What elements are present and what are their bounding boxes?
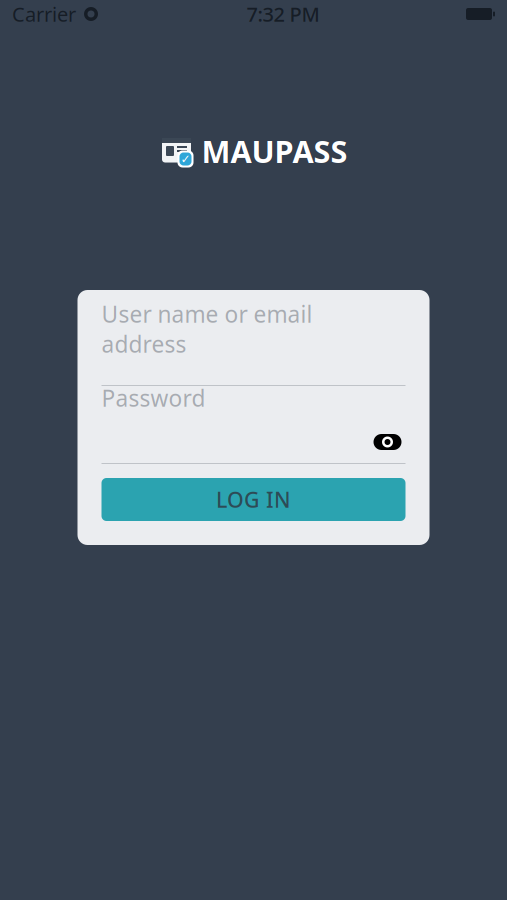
staticText: LOG IN [216, 485, 291, 514]
staticText: 7:32 PM [246, 1, 319, 27]
button[interactable]: Show password [369, 429, 405, 455]
staticText: User name or email address [101, 299, 312, 359]
staticText: ✓ [180, 152, 190, 166]
staticText: MAUPASS [201, 131, 347, 171]
staticText: Password [101, 383, 205, 413]
staticText: Carrier [12, 1, 76, 27]
button[interactable]: LOG IN [101, 478, 405, 521]
